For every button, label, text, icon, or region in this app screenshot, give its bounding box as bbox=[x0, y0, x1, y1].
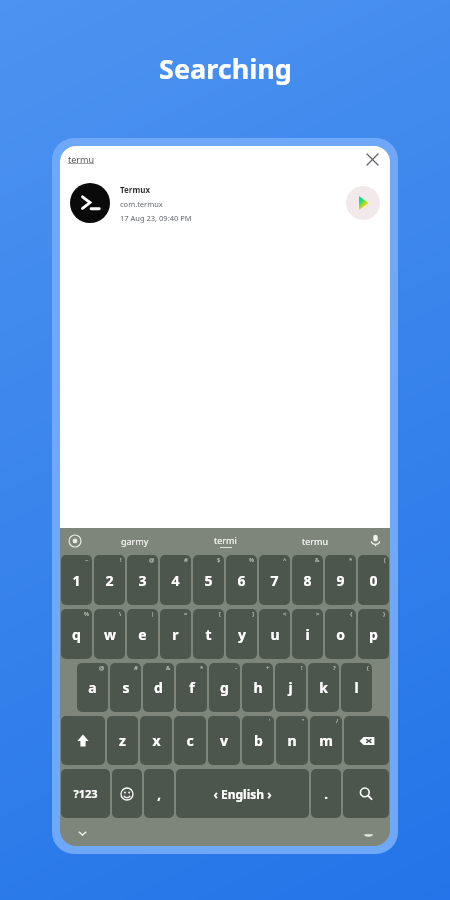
button[interactable]: Search bbox=[343, 769, 389, 818]
staticText: 17 Aug 23, 09:40 PM bbox=[120, 213, 192, 223]
staticText: 4 bbox=[171, 571, 180, 590]
button[interactable]: @ bbox=[127, 555, 158, 605]
staticText: v bbox=[220, 731, 228, 750]
button[interactable]: ~ bbox=[61, 555, 92, 605]
staticText: e bbox=[138, 625, 147, 644]
button[interactable]: [ bbox=[193, 609, 224, 659]
staticText: 8 bbox=[303, 571, 312, 590]
staticText: garmy bbox=[121, 535, 149, 547]
button[interactable]: termu bbox=[270, 528, 360, 553]
button[interactable]: Open in Play Store bbox=[346, 186, 380, 220]
button[interactable]: Termux bbox=[60, 172, 390, 234]
button[interactable]: * bbox=[325, 555, 356, 605]
staticText: ^ bbox=[283, 556, 287, 564]
button[interactable]: Close bbox=[362, 149, 382, 169]
button[interactable]: # bbox=[160, 555, 191, 605]
staticText: \ bbox=[119, 610, 122, 618]
button[interactable]: termu bbox=[68, 153, 362, 165]
button[interactable]: < bbox=[259, 609, 290, 659]
button[interactable]: ! bbox=[94, 555, 125, 605]
staticText: c bbox=[186, 731, 194, 750]
staticText: # bbox=[134, 664, 138, 672]
button[interactable]: % bbox=[61, 609, 92, 659]
button[interactable]: { bbox=[325, 609, 356, 659]
button[interactable]: Backspace bbox=[344, 716, 389, 765]
staticText: < bbox=[283, 610, 287, 618]
button[interactable]: } bbox=[358, 609, 389, 659]
staticText: h bbox=[253, 678, 263, 697]
button[interactable]: # bbox=[110, 663, 141, 712]
button[interactable]: " bbox=[276, 716, 308, 765]
staticText: * bbox=[349, 556, 353, 564]
button[interactable]: ^ bbox=[259, 555, 290, 605]
button[interactable]: = bbox=[160, 609, 191, 659]
button[interactable]: ?123 bbox=[61, 769, 110, 818]
staticText: f bbox=[189, 678, 195, 697]
button[interactable]: c bbox=[174, 716, 206, 765]
staticText: termi bbox=[214, 534, 237, 546]
button[interactable]: termi bbox=[180, 528, 270, 553]
staticText: z bbox=[119, 731, 126, 750]
button[interactable]: | bbox=[127, 609, 158, 659]
staticText: l bbox=[354, 678, 359, 697]
button[interactable]: ( bbox=[341, 663, 372, 712]
staticText: @ bbox=[99, 664, 105, 672]
button[interactable]: Emoji bbox=[112, 769, 142, 818]
staticText: 5 bbox=[204, 571, 213, 590]
staticText: ( bbox=[384, 556, 386, 564]
staticText: . bbox=[324, 785, 328, 803]
staticText: / bbox=[336, 717, 339, 725]
button[interactable]: - bbox=[209, 663, 240, 712]
button[interactable]: & bbox=[292, 555, 323, 605]
staticText: ! bbox=[301, 664, 303, 672]
button[interactable]: * bbox=[176, 663, 207, 712]
staticText: ?123 bbox=[73, 786, 98, 801]
staticText: " bbox=[302, 717, 305, 725]
staticText: % bbox=[84, 610, 89, 618]
button[interactable]: \ bbox=[94, 609, 125, 659]
button[interactable]: Hide keyboard bbox=[60, 820, 104, 846]
button[interactable]: x bbox=[140, 716, 172, 765]
staticText: | bbox=[151, 610, 155, 618]
button[interactable]: ! bbox=[275, 663, 306, 712]
staticText: ] bbox=[252, 610, 254, 618]
staticText: ! bbox=[120, 556, 122, 564]
staticText: o bbox=[336, 625, 345, 644]
staticText: - bbox=[235, 664, 237, 672]
button[interactable]: ' bbox=[242, 716, 274, 765]
staticText: 9 bbox=[336, 571, 345, 590]
staticText: r bbox=[172, 625, 179, 644]
button[interactable]: ? bbox=[308, 663, 339, 712]
staticText: y bbox=[238, 625, 246, 644]
staticText: 6 bbox=[237, 571, 246, 590]
staticText: p bbox=[369, 625, 378, 644]
button[interactable]: ‹ English › bbox=[176, 769, 309, 818]
button[interactable]: . bbox=[311, 769, 341, 818]
button[interactable]: $ bbox=[193, 555, 224, 605]
button[interactable]: ] bbox=[226, 609, 257, 659]
button[interactable]: garmy bbox=[90, 528, 180, 553]
staticText: + bbox=[266, 664, 270, 672]
staticText: @ bbox=[149, 556, 155, 564]
button[interactable]: Clipboard bbox=[60, 528, 90, 553]
button[interactable]: ( bbox=[358, 555, 389, 605]
staticText: k bbox=[319, 678, 328, 697]
button[interactable]: v bbox=[208, 716, 240, 765]
button[interactable]: Voice input bbox=[360, 528, 390, 553]
button[interactable]: @ bbox=[77, 663, 108, 712]
staticText: & bbox=[166, 664, 171, 672]
staticText: j bbox=[288, 678, 293, 697]
button[interactable]: / bbox=[310, 716, 342, 765]
button[interactable]: , bbox=[144, 769, 174, 818]
staticText: ~ bbox=[85, 556, 89, 564]
staticText: g bbox=[220, 678, 229, 697]
button[interactable]: z bbox=[107, 716, 138, 765]
staticText: Searching bbox=[159, 50, 292, 87]
staticText: t bbox=[205, 625, 212, 644]
button[interactable]: + bbox=[242, 663, 273, 712]
button[interactable]: & bbox=[143, 663, 174, 712]
button[interactable]: Shift bbox=[61, 716, 105, 765]
button[interactable]: % bbox=[226, 555, 257, 605]
button[interactable]: > bbox=[292, 609, 323, 659]
button[interactable]: Keyboard settings bbox=[346, 820, 390, 846]
